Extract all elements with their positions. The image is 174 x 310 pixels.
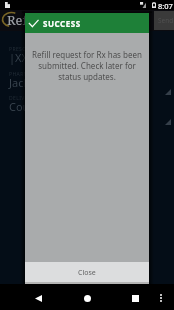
staticText: Send [158, 16, 174, 25]
staticText: Courier [9, 99, 48, 114]
staticText: DELIVERY [9, 95, 35, 102]
button[interactable]: Close [25, 262, 149, 284]
button[interactable]: More options [152, 284, 170, 310]
button[interactable]: Recents [113, 284, 157, 310]
button[interactable]: Home [65, 284, 109, 310]
button[interactable]: Send [154, 11, 174, 30]
staticText: Refill request for Rx has been submitted… [30, 49, 144, 82]
button[interactable]: Back [16, 284, 60, 310]
staticText: SUCCESS [43, 18, 81, 29]
staticText: |XX- [9, 50, 32, 65]
staticText: Jackson [9, 75, 49, 90]
staticText: 8:07 [158, 1, 173, 11]
staticText: PRESCRIPTION [9, 46, 49, 53]
staticText: Close [78, 268, 96, 278]
staticText: Refill [7, 11, 40, 29]
staticText: PHARMACY [9, 71, 39, 78]
